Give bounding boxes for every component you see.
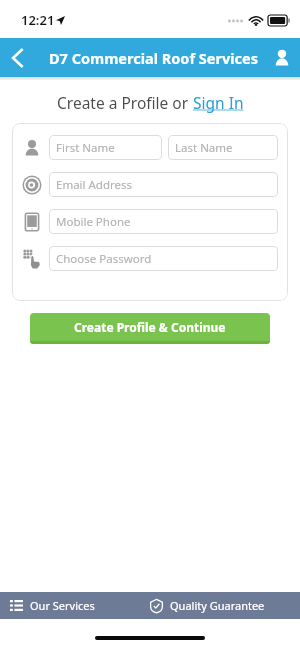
staticText: Quality Guarantee bbox=[170, 598, 265, 613]
button[interactable]: Quality Guarantee bbox=[150, 592, 300, 619]
staticText: Mobile Phone bbox=[56, 214, 131, 230]
staticText: Sign In bbox=[193, 92, 244, 113]
button[interactable]: Choose Password bbox=[49, 246, 278, 271]
button[interactable]: Mobile Phone bbox=[49, 209, 278, 234]
staticText: D7 Commercial Roof Services bbox=[49, 48, 258, 68]
staticText: 12:21 bbox=[21, 11, 55, 29]
staticText: First Name bbox=[56, 140, 115, 156]
staticText: Create a Profile or bbox=[57, 92, 193, 113]
button[interactable]: Last Name bbox=[168, 135, 278, 160]
button[interactable]: Account bbox=[264, 38, 300, 77]
staticText: Choose Password bbox=[56, 251, 152, 267]
staticText: Email Address bbox=[56, 177, 133, 193]
button[interactable]: Create Profile & Continue bbox=[30, 313, 270, 341]
staticText: Last Name bbox=[175, 140, 233, 156]
button[interactable]: Back bbox=[0, 38, 36, 77]
staticText: Our Services bbox=[30, 598, 95, 613]
button[interactable]: Email Address bbox=[49, 172, 278, 197]
button[interactable]: Sign In bbox=[193, 92, 244, 113]
button[interactable]: First Name bbox=[49, 135, 162, 160]
button[interactable]: Our Services bbox=[0, 592, 150, 619]
staticText: Create Profile & Continue bbox=[74, 319, 226, 335]
